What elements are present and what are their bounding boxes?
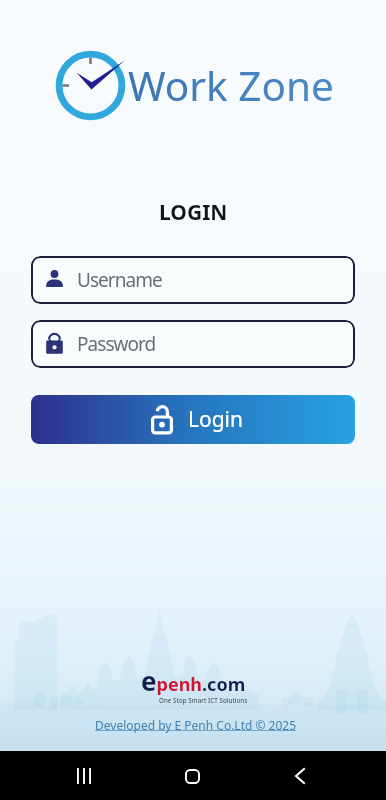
staticText: Login	[188, 405, 244, 434]
button[interactable]: Home	[168, 752, 216, 800]
staticText: Work Zone	[128, 58, 334, 113]
button[interactable]: Login	[31, 395, 355, 444]
staticText: Password	[77, 331, 156, 357]
button[interactable]: Password	[31, 320, 355, 368]
staticText: Username	[77, 267, 162, 293]
button[interactable]: Back	[276, 752, 324, 800]
staticText: LOGIN	[159, 198, 228, 227]
staticText: One Stop Smart ICT Solutions	[159, 696, 248, 704]
staticText: Developed by E Penh Co.Ltd © 2025	[95, 717, 297, 733]
staticText: epenh.com	[141, 663, 246, 698]
button[interactable]: Developed by E Penh Co.Ltd © 2025	[95, 717, 297, 733]
button[interactable]: Recent apps	[60, 752, 108, 800]
button[interactable]: Username	[31, 256, 355, 304]
